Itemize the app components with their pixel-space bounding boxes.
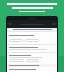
button[interactable]	[25, 39, 39, 42]
button[interactable]	[26, 59, 39, 62]
button[interactable]	[7, 68, 57, 72]
button[interactable]	[7, 54, 57, 63]
button[interactable]	[7, 34, 57, 43]
button[interactable]	[9, 39, 23, 42]
button[interactable]	[9, 59, 24, 62]
button[interactable]	[7, 46, 57, 51]
